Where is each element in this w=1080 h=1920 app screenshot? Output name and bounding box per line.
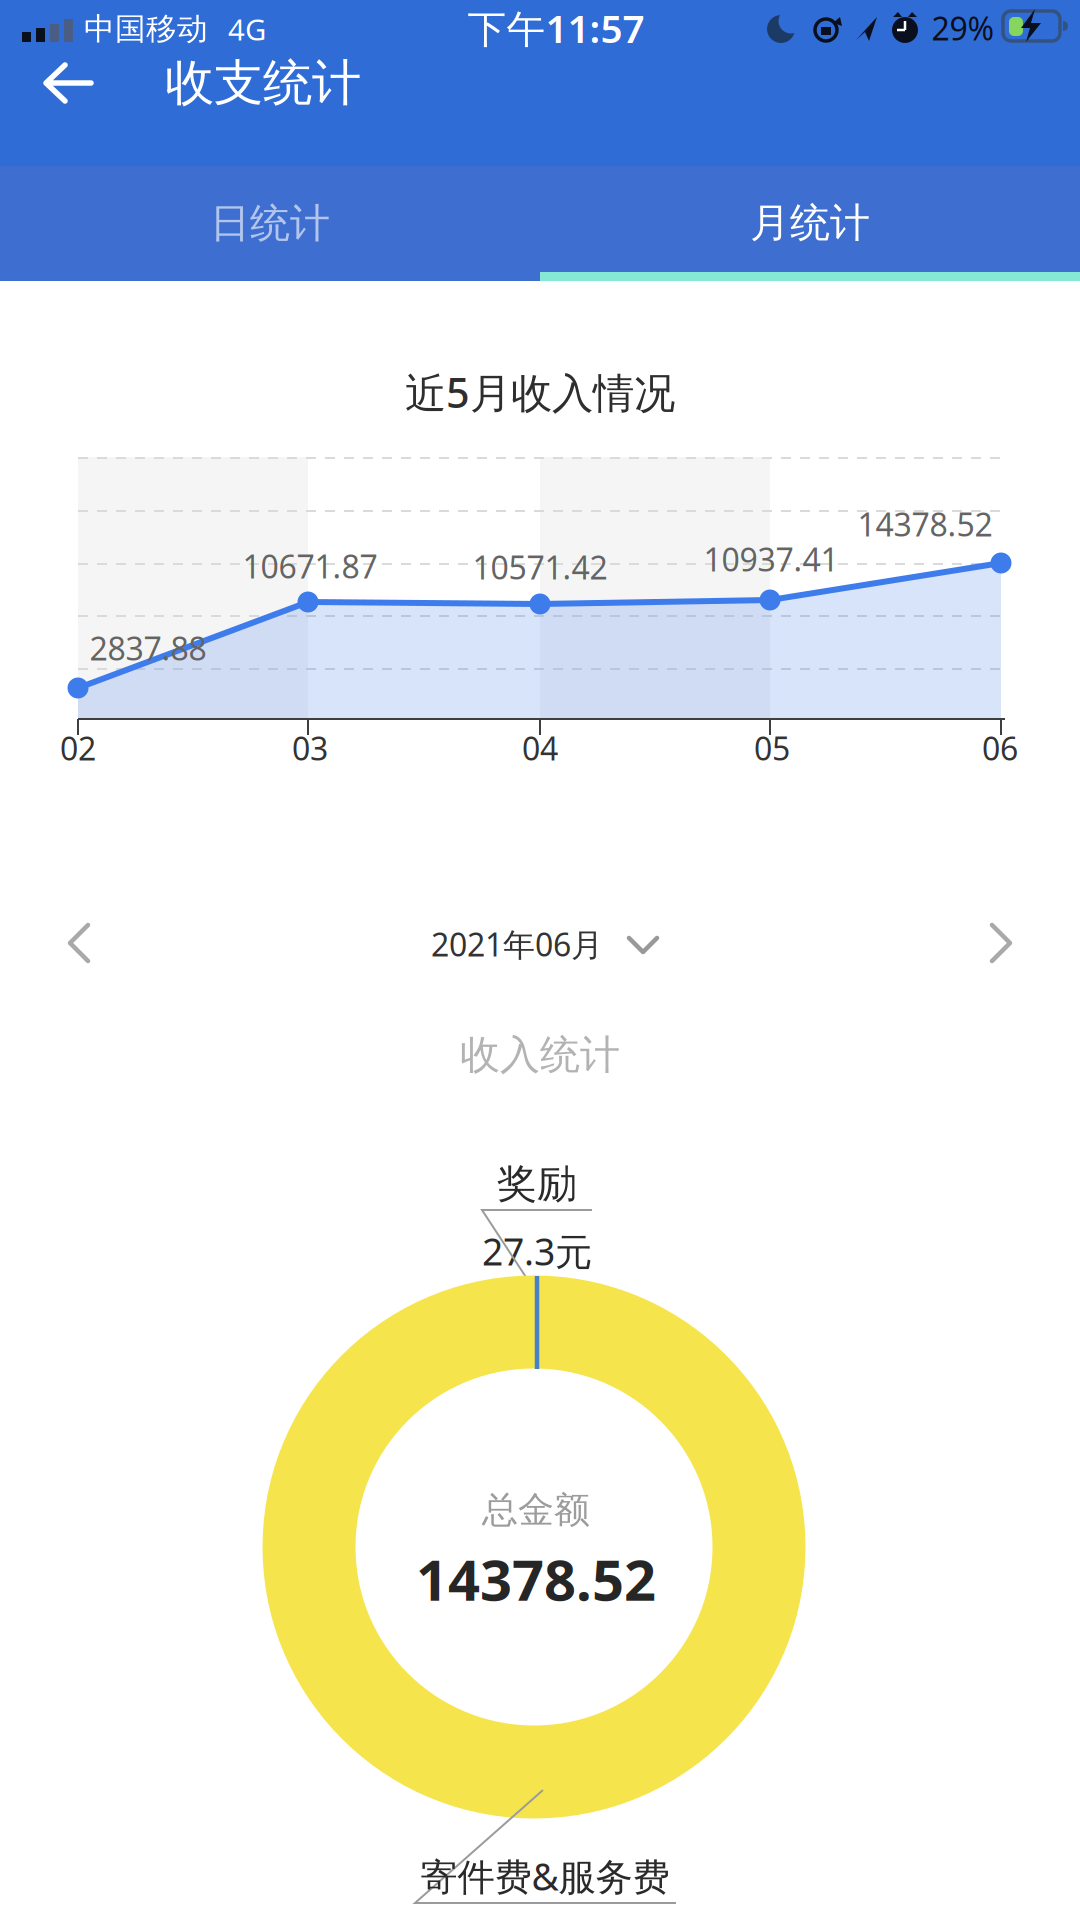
staticText: 29%	[931, 7, 994, 49]
button[interactable]: 2021年06月	[431, 923, 659, 965]
button[interactable]: Next month	[962, 913, 1022, 973]
staticText: 近5月收入情况	[405, 365, 675, 419]
staticText: 04	[522, 727, 558, 769]
staticText: 总金额	[482, 1488, 590, 1532]
staticText: 2837.88	[89, 627, 206, 669]
staticText: 2021年06月	[431, 923, 603, 965]
staticText: 寄件费&服务费	[420, 1851, 669, 1901]
staticText: 中国移动	[84, 10, 208, 48]
staticText: 03	[292, 727, 328, 769]
staticText: 14378.52	[416, 1542, 656, 1616]
button[interactable]: Previous month	[58, 913, 118, 973]
staticText: 27.3元	[482, 1226, 592, 1276]
staticText: 10671.87	[242, 545, 377, 587]
staticText: 14378.52	[857, 503, 992, 545]
staticText: 月统计	[750, 198, 870, 247]
button[interactable]: 日统计	[0, 166, 540, 281]
button[interactable]: Back	[25, 50, 113, 116]
button[interactable]: 月统计	[540, 166, 1080, 281]
staticText: 02	[60, 727, 96, 769]
staticText: 06	[982, 727, 1018, 769]
staticText: 05	[754, 727, 790, 769]
staticText: 4G	[228, 9, 266, 48]
staticText: 收入统计	[460, 1030, 620, 1079]
staticText: 10937.41	[703, 538, 838, 580]
staticText: 下午11:57	[467, 2, 644, 54]
staticText: 奖励	[497, 1159, 577, 1208]
staticText: 收支统计	[165, 53, 361, 113]
staticText: 10571.42	[472, 546, 607, 588]
staticText: 日统计	[210, 199, 330, 248]
